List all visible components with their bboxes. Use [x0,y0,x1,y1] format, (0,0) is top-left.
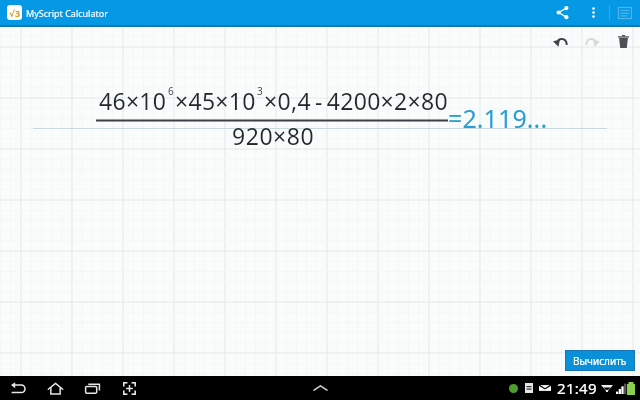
button[interactable]: Home [43,376,67,400]
staticText: Вычислить [573,354,627,368]
staticText: ×0,4 - 4200×2×80 [264,85,448,116]
staticText: 46×10 [99,85,167,116]
staticText: 6 [168,84,174,98]
button[interactable]: App icon [7,5,22,20]
button[interactable]: Share [550,0,575,25]
staticText: 920×80 [232,120,315,151]
button[interactable]: Redo [578,27,606,55]
button[interactable]: Back [6,376,30,400]
button[interactable]: More options [581,0,606,25]
button[interactable]: Recent apps [80,376,104,400]
staticText: 3 [257,84,263,98]
staticText: MyScript Calculator [26,7,108,19]
staticText: 21:49 [557,378,597,398]
staticText: ×45×10 [175,85,256,116]
button[interactable]: Screenshot [117,376,141,400]
button[interactable]: Delete [609,27,637,55]
staticText: =2.119... [448,101,548,135]
button[interactable]: Show hidden icons [308,376,332,400]
staticText: √3 [9,7,21,19]
button[interactable]: Вычислить [565,350,635,371]
button[interactable]: Screen capture [612,0,637,25]
button[interactable]: Undo [546,27,574,55]
